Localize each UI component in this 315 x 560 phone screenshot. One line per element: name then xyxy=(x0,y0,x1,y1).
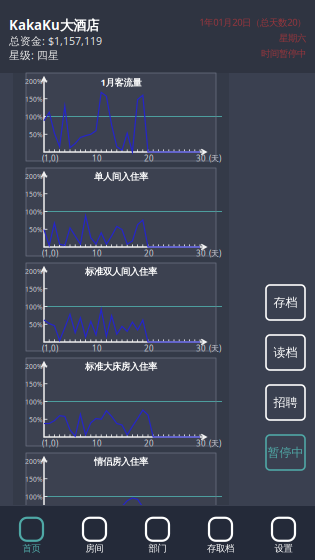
staticText: 30 xyxy=(196,248,206,259)
staticText: 100% xyxy=(25,112,43,121)
staticText: (天) xyxy=(209,533,221,544)
button[interactable]: 读档 xyxy=(266,335,305,370)
button[interactable]: 部门 xyxy=(126,512,189,554)
staticText: (天) xyxy=(209,153,221,164)
staticText: 1年01月20日（总天数20） xyxy=(199,16,306,28)
button[interactable]: 首页 xyxy=(0,512,63,554)
staticText: 单人间入住率 xyxy=(94,171,148,182)
staticText: 总资金: $1,157,119 xyxy=(9,34,102,48)
staticText: 10 xyxy=(92,343,102,354)
staticText: 20 xyxy=(144,248,154,259)
staticText: 150% xyxy=(25,380,43,389)
staticText: 1月客流量 xyxy=(100,76,141,88)
staticText: (天) xyxy=(209,438,221,449)
staticText: 50% xyxy=(29,130,43,139)
staticText: 150% xyxy=(25,285,43,294)
staticText: 情侣房入住率 xyxy=(94,456,148,467)
staticText: (1,0) xyxy=(42,248,58,259)
staticText: 100% xyxy=(25,397,43,406)
staticText: 100% xyxy=(25,302,43,311)
staticText: 标准双人间入住率 xyxy=(85,266,157,277)
staticText: 200% xyxy=(25,267,43,276)
staticText: 暂停中 xyxy=(267,445,303,460)
staticText: 10 xyxy=(92,153,102,164)
button[interactable]: 存取档 xyxy=(189,512,252,554)
staticText: 20 xyxy=(144,153,154,164)
staticText: 50% xyxy=(29,510,43,519)
staticText: 时间暂停中 xyxy=(261,48,306,59)
staticText: 50% xyxy=(29,415,43,424)
staticText: 30 xyxy=(196,343,206,354)
staticText: 设置 xyxy=(274,543,292,554)
button[interactable]: 房间 xyxy=(63,512,126,554)
staticText: 10 xyxy=(92,438,102,449)
button[interactable]: 设置 xyxy=(252,512,315,554)
staticText: (1,0) xyxy=(42,438,58,449)
staticText: (天) xyxy=(209,248,221,259)
staticText: 10 xyxy=(92,533,102,544)
staticText: 20 xyxy=(144,343,154,354)
staticText: 首页 xyxy=(22,543,40,554)
staticText: 30 xyxy=(196,438,206,449)
staticText: 星级: 四星 xyxy=(9,48,59,62)
staticText: 50% xyxy=(29,225,43,234)
staticText: 50% xyxy=(29,320,43,329)
button[interactable]: 存档 xyxy=(266,285,305,320)
staticText: 招聘 xyxy=(273,395,297,410)
staticText: 存档 xyxy=(273,295,297,310)
staticText: 150% xyxy=(25,95,43,104)
staticText: (1,0) xyxy=(42,153,58,164)
staticText: 20 xyxy=(144,438,154,449)
staticText: 标准大床房入住率 xyxy=(85,361,157,372)
staticText: (1,0) xyxy=(42,533,58,544)
staticText: 20 xyxy=(144,533,154,544)
staticText: 200% xyxy=(25,77,43,86)
staticText: 房间 xyxy=(85,543,103,554)
button[interactable]: 暂停中 xyxy=(266,435,305,470)
staticText: 150% xyxy=(25,190,43,199)
staticText: 部门 xyxy=(148,543,166,554)
staticText: 30 xyxy=(196,153,206,164)
staticText: 150% xyxy=(25,475,43,484)
staticText: 星期六 xyxy=(279,32,306,44)
staticText: 10 xyxy=(92,248,102,259)
button[interactable]: 招聘 xyxy=(266,385,305,420)
staticText: 100% xyxy=(25,492,43,501)
staticText: (1,0) xyxy=(42,343,58,354)
staticText: 存取档 xyxy=(207,543,234,554)
staticText: 200% xyxy=(25,457,43,466)
staticText: (天) xyxy=(209,343,221,354)
staticText: 读档 xyxy=(273,345,297,360)
staticText: 200% xyxy=(25,362,43,371)
staticText: KakaKu大酒店 xyxy=(9,16,99,34)
staticText: 100% xyxy=(25,207,43,216)
staticText: 200% xyxy=(25,172,43,181)
